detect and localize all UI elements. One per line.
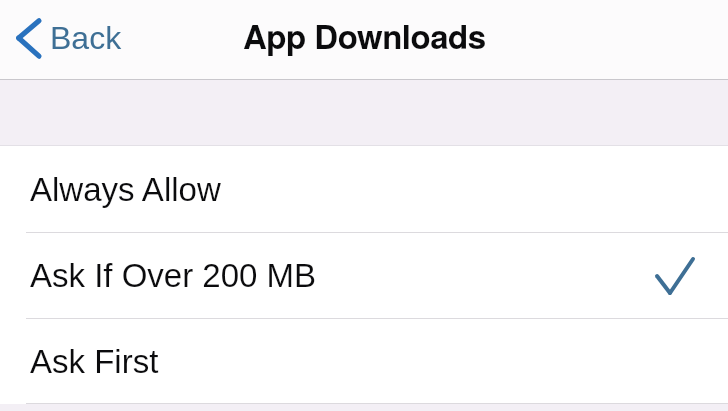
button[interactable]: Ask If Over 200 MB: [0, 233, 728, 319]
staticText: Always Allow: [30, 171, 221, 208]
button[interactable]: Always Allow: [0, 146, 728, 233]
other: Selected: [655, 257, 695, 295]
button[interactable]: Ask First: [0, 319, 728, 404]
staticText: Back: [50, 20, 122, 56]
staticText: Ask First: [30, 343, 159, 380]
button[interactable]: Back: [0, 3, 136, 73]
staticText: Ask If Over 200 MB: [30, 257, 317, 294]
staticText: App Downloads: [243, 12, 486, 59]
